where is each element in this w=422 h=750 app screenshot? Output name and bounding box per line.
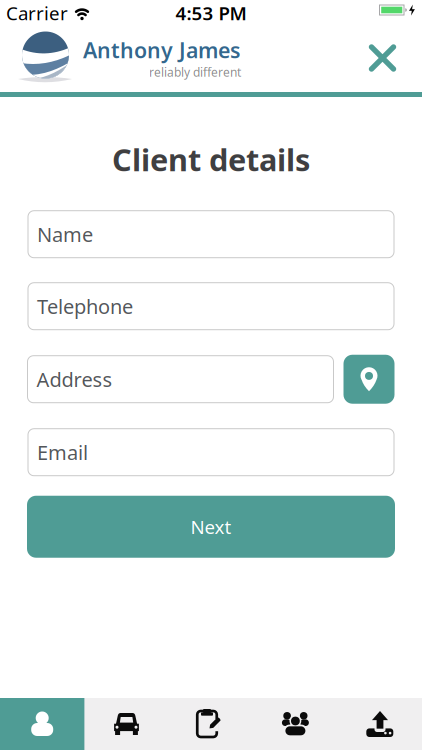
button[interactable]: [343, 355, 394, 404]
staticText: Telephone: [37, 293, 133, 319]
staticText: Email: [37, 439, 88, 465]
staticText: 4:53 PM: [175, 1, 246, 25]
button[interactable]: Telephone: [28, 283, 394, 330]
button[interactable]: Email: [28, 429, 394, 476]
staticText: Client details: [112, 139, 310, 180]
staticText: Address: [36, 366, 112, 392]
staticText: Next: [190, 514, 231, 539]
button[interactable]: [253, 698, 338, 750]
button[interactable]: [369, 44, 422, 71]
button[interactable]: Name: [28, 211, 394, 258]
staticText: Name: [37, 221, 93, 247]
staticText: Anthony James: [83, 36, 241, 64]
button[interactable]: [169, 698, 253, 750]
button[interactable]: [338, 698, 422, 750]
button[interactable]: Next: [27, 496, 395, 558]
button[interactable]: Address: [27, 356, 333, 403]
staticText: Carrier: [6, 1, 68, 25]
staticText: reliably different: [149, 64, 241, 80]
button[interactable]: [0, 698, 84, 750]
button[interactable]: [84, 698, 169, 750]
